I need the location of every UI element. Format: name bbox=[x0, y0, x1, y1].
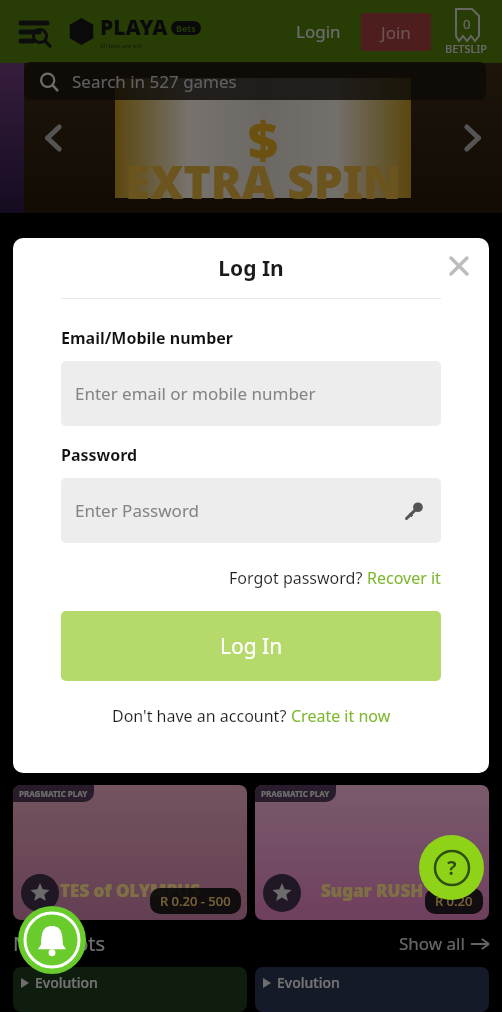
staticText: Enter Password bbox=[75, 499, 200, 522]
button[interactable]: Enter email or mobile number bbox=[61, 361, 441, 426]
staticText: Show all bbox=[399, 932, 465, 955]
button[interactable]: PRAGMATIC PLAY bbox=[13, 785, 247, 920]
staticText: Sugar RUSH bbox=[321, 879, 424, 902]
button[interactable]: Evolution bbox=[13, 967, 247, 1012]
staticText: Search in 527 games bbox=[72, 70, 237, 93]
button[interactable]: Join bbox=[361, 13, 431, 51]
staticText: PRAGMATIC PLAY bbox=[19, 788, 88, 799]
staticText: PRAGMATIC PLAY bbox=[261, 788, 330, 799]
staticText: EXTRA SPIN bbox=[125, 150, 402, 213]
staticText: Bets bbox=[176, 22, 196, 34]
staticText: All bets are on! bbox=[100, 42, 142, 50]
staticText: Log In bbox=[220, 632, 283, 661]
button[interactable]: Enter Password bbox=[61, 478, 441, 543]
button[interactable]: PRAGMATIC PLAY bbox=[255, 785, 489, 920]
button[interactable]: Search in 527 games bbox=[24, 62, 486, 100]
staticText: Evolution bbox=[277, 973, 340, 992]
button[interactable]: Next bbox=[452, 118, 492, 158]
button[interactable]: Log In bbox=[61, 611, 441, 681]
other: Show password bbox=[401, 498, 427, 524]
staticText: Password bbox=[61, 444, 138, 466]
button[interactable]: Recover it bbox=[367, 567, 441, 589]
staticText: Evolution bbox=[35, 973, 98, 992]
staticText: Email/Mobile number bbox=[61, 327, 234, 349]
staticText: R 0.20 bbox=[435, 892, 473, 910]
staticText: Login bbox=[296, 20, 341, 43]
button[interactable]: Menu and search bbox=[14, 12, 54, 52]
staticText: TES of OLYMPUS bbox=[60, 879, 200, 902]
staticText: BETSLIP bbox=[445, 41, 488, 56]
staticText: Forgot password? bbox=[229, 567, 367, 589]
staticText: Enter email or mobile number bbox=[75, 382, 316, 405]
staticText: $ bbox=[248, 103, 279, 174]
staticText: Join bbox=[381, 21, 411, 44]
button[interactable]: Close bbox=[439, 246, 479, 286]
button[interactable]: Notifications bbox=[18, 906, 86, 974]
button[interactable]: PlayaBets home bbox=[68, 13, 201, 50]
staticText: Log In bbox=[218, 254, 284, 283]
button[interactable]: Help bbox=[419, 835, 484, 900]
button[interactable]: Evolution bbox=[255, 967, 489, 1012]
staticText: 0 bbox=[463, 15, 471, 33]
button[interactable]: Create it now bbox=[291, 705, 391, 727]
staticText: Don't have an account? bbox=[112, 705, 291, 727]
staticText: ? bbox=[447, 854, 457, 881]
button[interactable]: Previous bbox=[34, 118, 74, 158]
button[interactable]: Login bbox=[288, 12, 349, 51]
staticText: New Slots bbox=[13, 930, 106, 957]
staticText: PLAYA bbox=[100, 13, 168, 42]
button[interactable]: Show all bbox=[399, 932, 489, 955]
staticText: R 0.20 - 500 bbox=[160, 892, 231, 910]
button[interactable]: Betslip bbox=[445, 7, 488, 56]
